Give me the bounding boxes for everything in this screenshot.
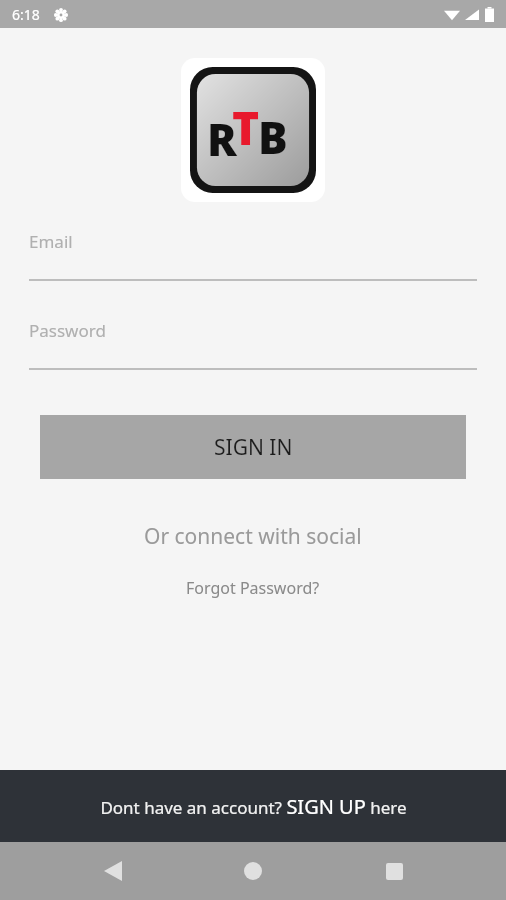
- staticText: B: [258, 107, 288, 167]
- staticText: SIGN IN: [214, 433, 293, 462]
- staticText: 6:18: [12, 5, 40, 24]
- button[interactable]: Back: [85, 843, 141, 899]
- staticText: T: [232, 96, 260, 159]
- staticText: R: [207, 109, 237, 169]
- button[interactable]: Or connect with social: [136, 519, 370, 554]
- button[interactable]: Password: [29, 319, 477, 370]
- staticText: Email: [29, 230, 73, 253]
- button[interactable]: Recent apps: [366, 843, 422, 899]
- button[interactable]: SIGN IN: [40, 415, 466, 479]
- button[interactable]: Forgot Password?: [178, 574, 328, 602]
- staticText: Password: [29, 319, 106, 342]
- button[interactable]: Home: [225, 843, 281, 899]
- button[interactable]: Email: [29, 230, 477, 281]
- button[interactable]: Dont have an account? SIGN UP here: [0, 770, 506, 842]
- staticText: Dont have an account? SIGN UP here: [100, 793, 407, 820]
